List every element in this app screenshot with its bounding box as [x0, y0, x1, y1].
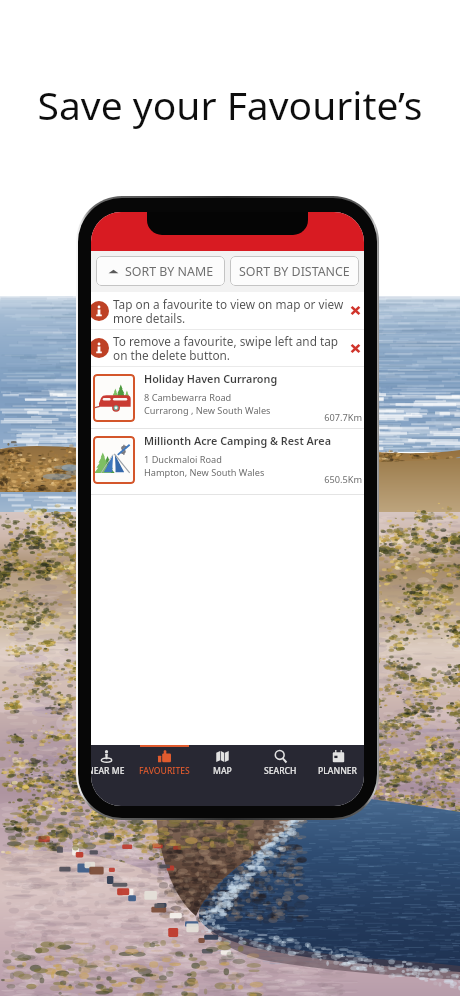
button[interactable]: Holiday Haven Currarong	[91, 367, 364, 429]
button[interactable]: PLANNER	[309, 745, 364, 779]
staticText: 8 Cambewarra Road	[144, 391, 232, 404]
button[interactable]: SEARCH	[251, 745, 309, 779]
staticText: Currarong , New South Wales	[144, 404, 271, 417]
button[interactable]: To remove a favourite, swipe left and ta…	[91, 330, 364, 366]
button[interactable]: Dismiss	[349, 304, 362, 317]
staticText: MAP	[213, 765, 232, 777]
button[interactable]: FAVOURITES	[135, 745, 193, 779]
button[interactable]: NEAR ME	[91, 745, 135, 779]
staticText: Hampton, New South Wales	[144, 466, 265, 479]
staticText: PLANNER	[318, 765, 358, 777]
staticText: Tap on a favourite to view on map or vie…	[113, 296, 347, 326]
staticText: FAVOURITES	[139, 765, 190, 777]
button[interactable]: MAP	[193, 745, 251, 779]
button[interactable]: Millionth Acre Camping & Rest Area	[91, 429, 364, 495]
staticText: 607.7Km	[324, 411, 362, 424]
staticText: NEAR ME	[91, 765, 125, 777]
staticText: SEARCH	[264, 765, 297, 777]
staticText: 650.5Km	[324, 473, 362, 486]
button[interactable]: SORT BY NAME	[96, 256, 225, 286]
button[interactable]: Tap on a favourite to view on map or vie…	[91, 292, 364, 329]
staticText: Holiday Haven Currarong	[144, 371, 278, 386]
staticText: To remove a favourite, swipe left and ta…	[113, 333, 347, 363]
staticText: 1 Duckmaloi Road	[144, 453, 222, 466]
button[interactable]: Dismiss	[349, 342, 362, 355]
staticText: SORT BY DISTANCE	[239, 263, 350, 280]
button[interactable]: SORT BY DISTANCE	[230, 256, 359, 286]
staticText: SORT BY NAME	[125, 263, 214, 280]
staticText: Millionth Acre Camping & Rest Area	[144, 433, 331, 448]
staticText: Save your Favourite’s	[0, 78, 460, 131]
